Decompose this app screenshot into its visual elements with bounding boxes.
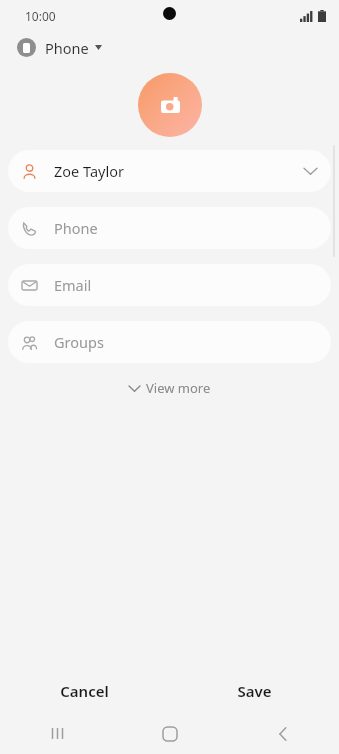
button[interactable]: View more [119,374,221,402]
staticText: View more [146,379,211,397]
button[interactable]: Groups [8,321,331,363]
button[interactable]: Zoe Taylor [8,150,331,192]
button[interactable]: Phone [0,31,339,64]
button[interactable]: Home [144,713,196,754]
staticText: Email [54,275,317,295]
button[interactable]: Add contact photo [138,73,202,137]
staticText: Zoe Taylor [54,161,304,181]
staticText: Cancel [60,681,109,701]
staticText: Phone [54,218,317,238]
button[interactable]: Back [257,713,309,754]
button[interactable]: Phone [8,207,331,249]
button[interactable]: Save [169,669,339,713]
button[interactable]: Email [8,264,331,306]
button[interactable]: Cancel [0,669,169,713]
staticText: Phone [45,38,89,58]
staticText: 10:00 [25,8,56,24]
button[interactable]: Recent apps [31,713,83,754]
staticText: Groups [54,332,317,352]
staticText: Save [237,681,272,701]
